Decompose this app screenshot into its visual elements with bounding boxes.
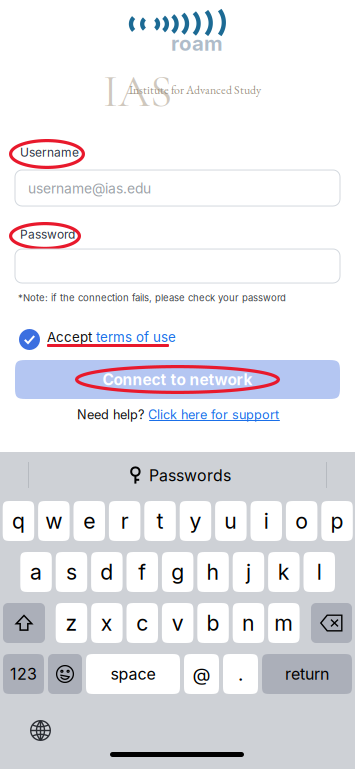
button[interactable]: w [38, 501, 70, 541]
button[interactable]: o [286, 501, 317, 541]
button[interactable]: q [3, 501, 34, 541]
staticText: i [264, 508, 269, 534]
button[interactable]: Accept [47, 329, 176, 345]
staticText: h [207, 559, 220, 585]
button[interactable]: c [126, 603, 158, 643]
button[interactable]: v [162, 603, 193, 643]
button[interactable]: u [215, 501, 247, 541]
staticText: roam [171, 31, 223, 56]
staticText: t [156, 508, 163, 534]
button[interactable]: p [321, 501, 353, 541]
staticText: Need help? [77, 407, 148, 422]
staticText: return [285, 664, 329, 684]
button[interactable]: b [197, 603, 229, 643]
staticText: f [138, 559, 146, 585]
staticText: b [207, 610, 220, 636]
button[interactable]: s [56, 552, 87, 592]
staticText: terms of use [96, 329, 176, 345]
staticText: k [278, 559, 290, 585]
button[interactable]: Click here for support [148, 407, 279, 422]
staticText: space [110, 664, 155, 684]
button[interactable]: a [20, 552, 52, 592]
button[interactable]: n [233, 603, 264, 643]
staticText: Accept [47, 329, 96, 345]
staticText: u [224, 508, 237, 534]
button[interactable]: Delete [311, 603, 352, 643]
staticText: l [317, 559, 322, 585]
button[interactable]: k [268, 552, 300, 592]
staticText: Connect to network [102, 370, 252, 389]
staticText: Institute for Advanced Study [129, 82, 261, 97]
button[interactable]: x [91, 603, 123, 643]
staticText: v [172, 610, 184, 636]
button[interactable]: return [262, 654, 352, 694]
staticText: @ [192, 663, 210, 685]
staticText: j [246, 559, 251, 585]
staticText: *Note: if the connection fails, please c… [18, 292, 286, 303]
button[interactable]: Switch keyboard [30, 720, 51, 741]
staticText: . [238, 663, 243, 685]
staticText: y [189, 508, 201, 534]
staticText: p [330, 508, 343, 534]
staticText: n [242, 610, 255, 636]
staticText: x [101, 610, 113, 636]
button[interactable]: Emoji keyboard [48, 654, 82, 694]
staticText: c [136, 610, 148, 636]
button[interactable]: t [144, 501, 176, 541]
button[interactable]: Connect to network [15, 360, 340, 399]
staticText: a [30, 559, 42, 585]
staticText: Username [20, 145, 79, 159]
button[interactable]: Accept terms of use checkbox [19, 329, 40, 350]
staticText: IAS [103, 64, 172, 119]
button[interactable]: h [197, 552, 229, 592]
staticText: Password [20, 227, 75, 241]
staticText: Passwords [149, 466, 231, 485]
staticText: o [295, 508, 308, 534]
button[interactable]: y [180, 501, 211, 541]
staticText: w [45, 508, 62, 534]
staticText: g [171, 559, 184, 585]
staticText: e [83, 508, 95, 534]
button[interactable]: z [56, 603, 87, 643]
button[interactable]: 123 [3, 654, 44, 694]
staticText: Click here for support [148, 407, 279, 422]
button[interactable]: @ [184, 654, 219, 694]
staticText: q [12, 508, 25, 534]
button[interactable]: d [91, 552, 123, 592]
staticText: r [121, 508, 129, 534]
button[interactable]: e [73, 501, 105, 541]
staticText: s [66, 559, 77, 585]
button[interactable]: j [233, 552, 264, 592]
button[interactable]: m [268, 603, 300, 643]
button[interactable]: f [126, 552, 158, 592]
button[interactable]: i [250, 501, 282, 541]
button[interactable]: l [303, 552, 335, 592]
button[interactable]: Shift [3, 603, 45, 643]
button[interactable]: . [223, 654, 258, 694]
button[interactable]: g [162, 552, 193, 592]
staticText: 123 [10, 664, 37, 684]
staticText: m [274, 610, 293, 636]
button[interactable]: Passwords [130, 466, 231, 485]
staticText: username@ias.edu [28, 180, 151, 197]
button[interactable]: r [109, 501, 140, 541]
button[interactable]: space [86, 654, 180, 694]
staticText: z [65, 610, 77, 636]
staticText: d [100, 559, 113, 585]
